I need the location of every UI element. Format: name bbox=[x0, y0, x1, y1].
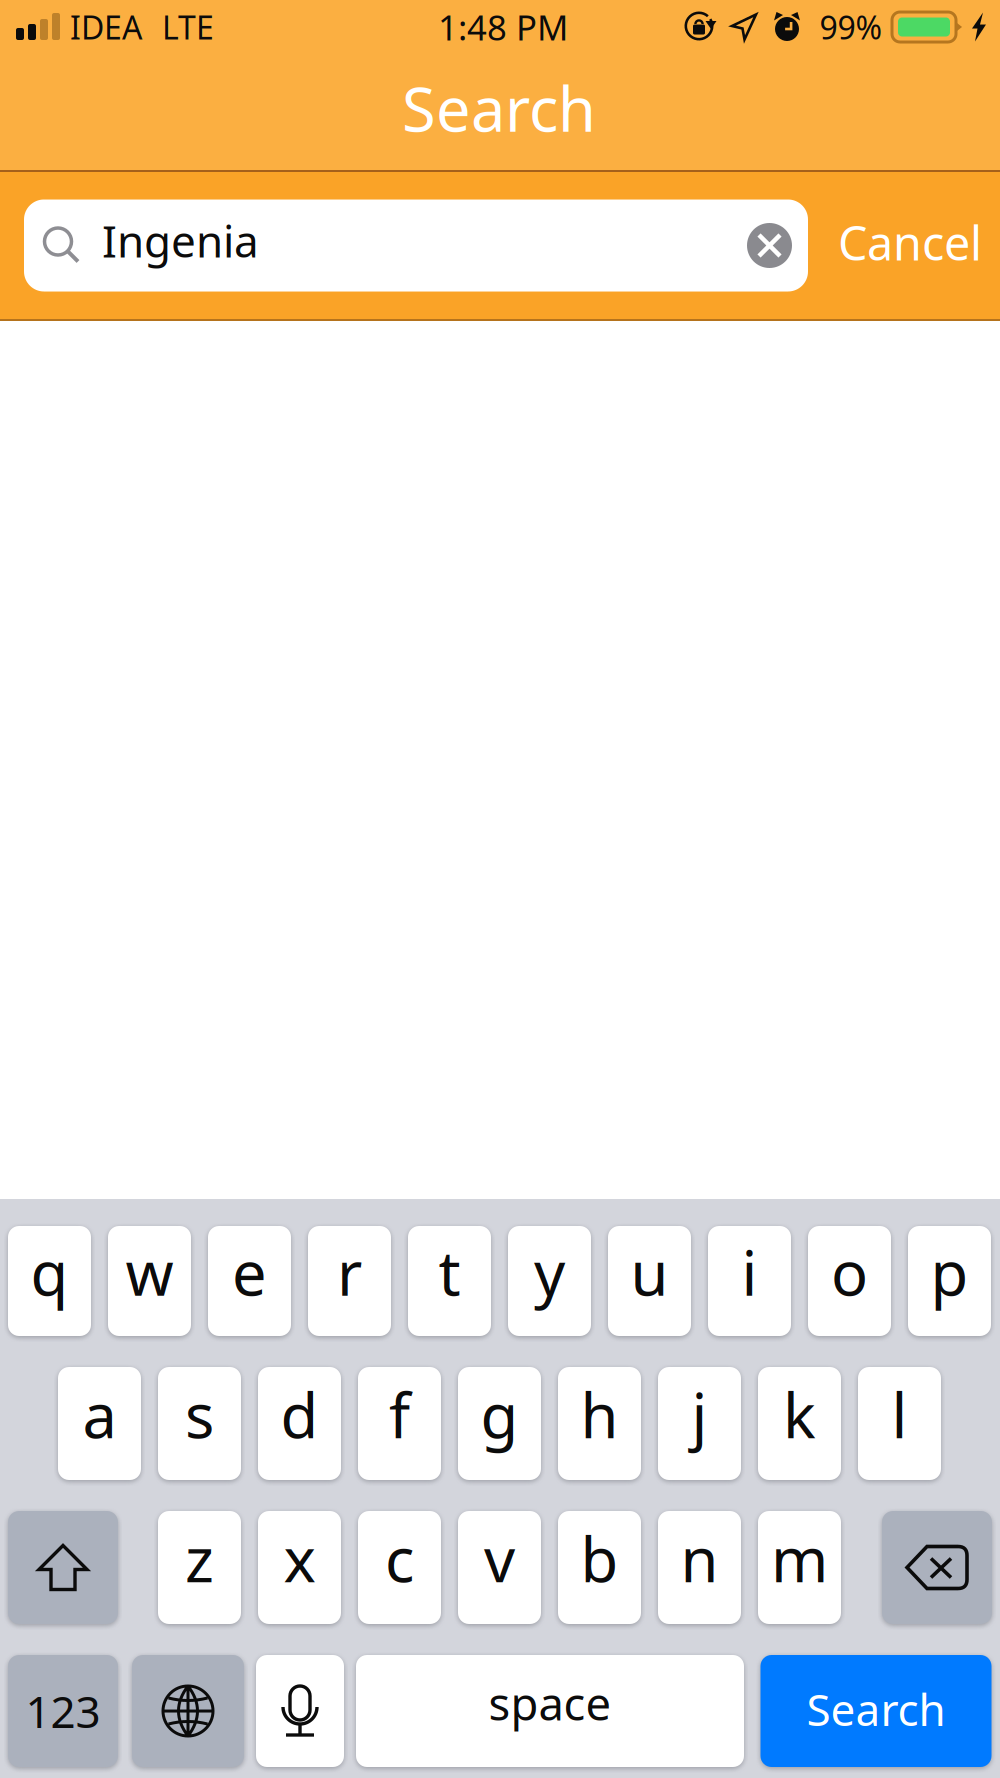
staticText: 99% bbox=[819, 6, 882, 48]
button[interactable]: Search bbox=[760, 1655, 991, 1767]
staticText: 123 bbox=[25, 1682, 100, 1740]
button[interactable]: b bbox=[558, 1511, 641, 1624]
button[interactable]: o bbox=[808, 1226, 891, 1336]
button[interactable]: Cancel bbox=[833, 214, 977, 276]
button[interactable]: Delete bbox=[882, 1511, 992, 1624]
staticText: LTE bbox=[162, 6, 214, 48]
button[interactable]: p bbox=[908, 1226, 991, 1336]
button[interactable]: Next keyboard bbox=[132, 1655, 244, 1767]
staticText: l bbox=[891, 1374, 907, 1455]
button[interactable]: d bbox=[258, 1367, 341, 1480]
staticText: space bbox=[488, 1673, 611, 1733]
staticText: q bbox=[30, 1231, 68, 1313]
staticText: Cancel bbox=[838, 211, 982, 273]
staticText: u bbox=[630, 1231, 668, 1313]
staticText: h bbox=[580, 1374, 618, 1455]
button[interactable]: l bbox=[858, 1367, 941, 1480]
staticText: t bbox=[438, 1231, 460, 1313]
staticText: Search bbox=[402, 67, 596, 149]
staticText: s bbox=[185, 1374, 214, 1455]
button[interactable]: y bbox=[508, 1226, 591, 1336]
staticText: r bbox=[337, 1231, 362, 1313]
staticText: z bbox=[185, 1518, 214, 1599]
staticText: e bbox=[232, 1231, 267, 1313]
staticText: 1:48 PM bbox=[438, 4, 568, 50]
staticText: a bbox=[82, 1374, 116, 1455]
staticText: x bbox=[283, 1518, 315, 1599]
staticText: k bbox=[783, 1374, 816, 1455]
staticText: d bbox=[280, 1374, 318, 1455]
button[interactable]: c bbox=[358, 1511, 441, 1624]
button[interactable]: a bbox=[58, 1367, 141, 1480]
staticText: p bbox=[930, 1231, 968, 1313]
button[interactable]: i bbox=[708, 1226, 791, 1336]
button[interactable]: w bbox=[108, 1226, 191, 1336]
button[interactable]: h bbox=[558, 1367, 641, 1480]
button[interactable]: Clear text bbox=[747, 223, 792, 268]
staticText: IDEA bbox=[70, 6, 142, 48]
staticText: g bbox=[480, 1374, 518, 1455]
button[interactable]: space bbox=[356, 1655, 744, 1767]
staticText: m bbox=[771, 1518, 828, 1599]
staticText: v bbox=[484, 1518, 515, 1599]
button[interactable]: t bbox=[408, 1226, 491, 1336]
staticText: n bbox=[680, 1518, 718, 1599]
button[interactable]: u bbox=[608, 1226, 691, 1336]
button[interactable]: q bbox=[8, 1226, 91, 1336]
staticText: f bbox=[389, 1374, 410, 1455]
staticText: b bbox=[580, 1518, 618, 1599]
button[interactable]: v bbox=[458, 1511, 541, 1624]
button[interactable]: 123 bbox=[8, 1655, 118, 1767]
button[interactable]: n bbox=[658, 1511, 741, 1624]
staticText: j bbox=[691, 1374, 707, 1455]
button[interactable]: f bbox=[358, 1367, 441, 1480]
button[interactable]: Shift bbox=[8, 1511, 118, 1624]
button[interactable]: k bbox=[758, 1367, 841, 1480]
staticText: Search bbox=[806, 1680, 945, 1738]
button[interactable]: z bbox=[158, 1511, 241, 1624]
button[interactable]: s bbox=[158, 1367, 241, 1480]
button[interactable]: m bbox=[758, 1511, 841, 1624]
button[interactable]: e bbox=[208, 1226, 291, 1336]
staticText: o bbox=[831, 1231, 868, 1313]
staticText: i bbox=[741, 1231, 757, 1313]
staticText: c bbox=[385, 1518, 414, 1599]
button[interactable]: x bbox=[258, 1511, 341, 1624]
button[interactable]: r bbox=[308, 1226, 391, 1336]
button[interactable]: Dictation bbox=[256, 1655, 344, 1767]
staticText: y bbox=[534, 1231, 565, 1313]
button[interactable]: g bbox=[458, 1367, 541, 1480]
staticText: Ingenia bbox=[102, 211, 259, 270]
button[interactable]: j bbox=[658, 1367, 741, 1480]
staticText: w bbox=[125, 1231, 173, 1313]
